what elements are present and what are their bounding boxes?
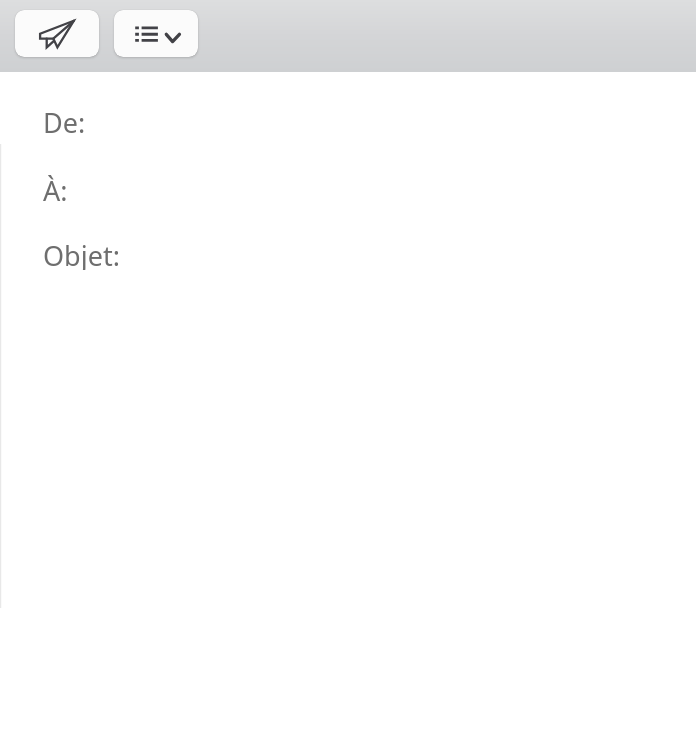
- button[interactable]: Send: [15, 10, 99, 57]
- staticText: À:: [43, 172, 68, 205]
- button[interactable]: À:: [0, 172, 696, 205]
- staticText: De:: [43, 104, 86, 137]
- button[interactable]: Objet:: [0, 237, 696, 270]
- button[interactable]: Formatting options: [114, 10, 198, 57]
- staticText: Objet:: [43, 237, 120, 270]
- button[interactable]: De:: [0, 104, 696, 137]
